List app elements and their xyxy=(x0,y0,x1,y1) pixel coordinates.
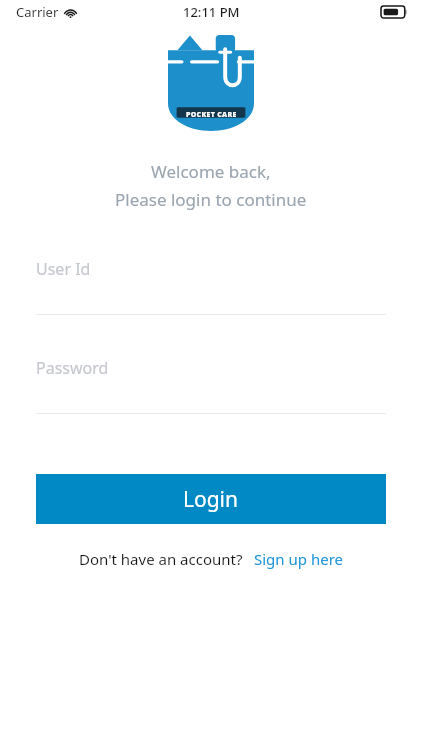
staticText: Please login to continue xyxy=(115,188,307,211)
button[interactable]: User Id xyxy=(36,258,386,315)
button[interactable]: Password xyxy=(36,357,386,414)
staticText: Welcome back, xyxy=(151,160,271,183)
staticText: POCKET CARE xyxy=(186,110,237,120)
other: Pocket Care logo xyxy=(168,32,254,131)
staticText: Don't have an account? xyxy=(79,549,243,569)
button[interactable]: Login xyxy=(36,474,386,524)
staticText: Sign up here xyxy=(254,549,343,569)
staticText: Password xyxy=(36,357,109,379)
staticText: User Id xyxy=(36,258,91,280)
staticText: 12:11 PM xyxy=(183,3,240,21)
button[interactable]: Sign up here xyxy=(254,549,343,569)
staticText: Carrier xyxy=(16,3,59,21)
staticText: Login xyxy=(183,485,239,514)
